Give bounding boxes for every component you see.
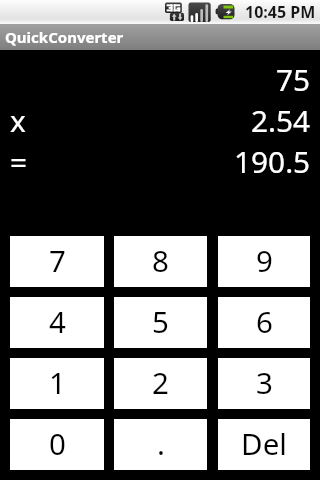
staticText: 190.5 (234, 141, 311, 182)
staticText: 1 (49, 362, 66, 402)
staticText: 9 (256, 240, 273, 280)
staticText: 75 (276, 59, 311, 100)
staticText: 4 (49, 301, 66, 341)
staticText: QuickConverter (5, 27, 124, 47)
button[interactable]: 6 (218, 297, 310, 348)
staticText: Del (241, 423, 287, 463)
button[interactable]: 8 (114, 236, 207, 287)
button[interactable]: 0 (10, 419, 104, 470)
button[interactable]: 5 (114, 297, 207, 348)
button[interactable]: 3 (218, 358, 310, 409)
button[interactable]: 4 (10, 297, 104, 348)
staticText: 7 (49, 240, 66, 280)
staticText: x (10, 100, 26, 141)
staticText: 8 (152, 240, 169, 280)
button[interactable]: 1 (10, 358, 104, 409)
button[interactable]: . (114, 419, 207, 470)
staticText: 2 (152, 362, 169, 402)
staticText: 6 (256, 301, 273, 341)
staticText: = (10, 141, 28, 182)
button[interactable]: 9 (218, 236, 310, 287)
staticText: . (157, 423, 165, 463)
staticText: 10:45 PM (245, 1, 316, 23)
staticText: 5 (152, 301, 169, 341)
button[interactable]: 2 (114, 358, 207, 409)
staticText: 0 (49, 423, 66, 463)
button[interactable]: Del (218, 419, 310, 470)
other: 3G network, signal strength, battery cha… (0, 0, 320, 24)
button[interactable]: 7 (10, 236, 104, 287)
staticText: 2.54 (251, 100, 311, 141)
staticText: 3 (256, 362, 273, 402)
